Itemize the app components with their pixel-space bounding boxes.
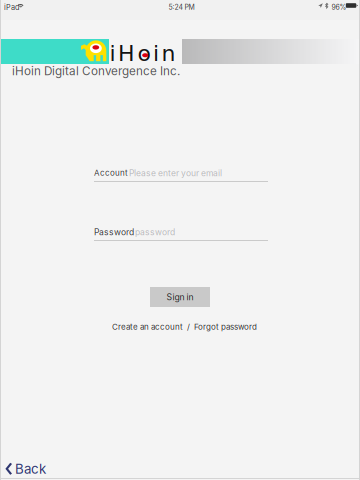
button[interactable]: Create an account / Forgot password — [112, 322, 257, 332]
staticText: Sign in — [166, 292, 193, 302]
staticText: Create an account / Forgot password — [112, 322, 257, 332]
staticText: iHoin — [109, 40, 175, 66]
staticText: Back — [15, 461, 46, 477]
staticText: 5:24 PM — [168, 3, 194, 11]
staticText: Password — [94, 227, 134, 237]
staticText: Please enter your email — [129, 168, 222, 178]
staticText: iPad — [4, 3, 19, 12]
staticText: 96% — [332, 3, 347, 11]
button[interactable]: Sign in — [150, 287, 210, 307]
staticText: Account — [94, 168, 128, 178]
staticText: password — [135, 227, 175, 237]
button[interactable]: Back — [0, 458, 60, 480]
staticText: iHoin Digital Convergence Inc. — [12, 64, 180, 78]
